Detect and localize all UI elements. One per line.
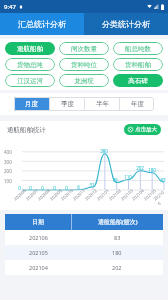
staticText: 龙洲垸: [74, 77, 94, 85]
staticText: 380: [100, 148, 108, 154]
staticText: 通航船舶(艘次): [98, 218, 138, 226]
staticText: 0: [53, 185, 56, 191]
staticText: 船总吨数: [125, 45, 151, 53]
staticText: 79: [112, 177, 118, 183]
staticText: 日期: [32, 218, 44, 226]
staticText: 202: [112, 264, 122, 271]
staticText: 货种吨位: [71, 61, 97, 69]
staticText: 9:47: [4, 3, 16, 11]
button[interactable]: 江汉运河: [5, 74, 55, 87]
staticText: 高石碑: [128, 77, 148, 85]
button[interactable]: 高石碑: [113, 74, 163, 87]
button[interactable]: 通航船舶: [5, 42, 55, 55]
staticText: 0: [18, 185, 21, 191]
staticText: 202103: [120, 188, 135, 202]
staticText: 202006: [13, 188, 28, 202]
staticText: 100: [4, 178, 12, 184]
staticText: 通航船舶: [17, 45, 43, 53]
staticText: 202106: [153, 189, 168, 207]
staticText: 202011: [72, 188, 87, 202]
staticText: 月度: [25, 100, 38, 108]
staticText: 202: [136, 165, 144, 171]
staticText: 200: [4, 168, 12, 174]
staticText: 202106: [29, 234, 48, 241]
button[interactable]: 货物总吨: [5, 58, 55, 71]
staticText: 202101: [96, 188, 111, 202]
button[interactable]: 分类统计分析: [84, 13, 168, 35]
button[interactable]: 船总吨数: [113, 42, 163, 55]
staticText: 202007: [25, 188, 40, 202]
button[interactable]: 半年: [85, 97, 119, 111]
staticText: 点击放大: [135, 126, 157, 133]
staticText: 0: [29, 185, 32, 191]
staticText: 0: [41, 185, 44, 191]
staticText: 汇总统计分析: [18, 19, 66, 29]
button[interactable]: 点击放大: [128, 126, 157, 133]
staticText: 202012: [84, 188, 99, 202]
staticText: 83: [160, 177, 166, 183]
button[interactable]: 年度: [120, 97, 154, 111]
button[interactable]: 202106: [5, 230, 163, 245]
staticText: 300: [4, 159, 12, 165]
staticText: 202105: [143, 188, 158, 202]
staticText: 180: [148, 167, 156, 173]
staticText: 0: [65, 185, 68, 191]
staticText: 分类统计分析: [102, 19, 150, 29]
staticText: 180: [112, 249, 122, 256]
staticText: 400: [4, 149, 12, 155]
button[interactable]: 202104: [5, 260, 163, 275]
staticText: 江汉运河: [17, 77, 43, 85]
staticText: 6: [77, 184, 80, 190]
button[interactable]: 汇总统计分析: [0, 13, 84, 35]
staticText: 半年: [96, 100, 109, 108]
button[interactable]: 闸次数量: [59, 42, 109, 55]
button[interactable]: 龙洲垸: [59, 74, 109, 87]
staticText: 季度: [61, 100, 74, 108]
staticText: 202104: [131, 188, 146, 202]
staticText: 闸次数量: [71, 45, 97, 53]
staticText: 通航船舶统计: [7, 126, 46, 134]
staticText: 202104: [29, 264, 48, 271]
button[interactable]: 货种吨位: [59, 58, 109, 71]
staticText: 83: [114, 234, 121, 241]
staticText: 202010: [60, 188, 75, 202]
staticText: 202008: [37, 188, 52, 202]
staticText: 货种船舶: [125, 61, 151, 69]
button[interactable]: 202105: [5, 245, 163, 260]
button[interactable]: 月度: [14, 97, 49, 111]
staticText: 202009: [49, 188, 64, 202]
staticText: 货物总吨: [17, 61, 43, 69]
staticText: 202102: [108, 188, 123, 202]
staticText: 110: [124, 174, 132, 180]
staticText: 202105: [29, 249, 48, 256]
staticText: 年度: [131, 100, 144, 108]
button[interactable]: 货种船舶: [113, 58, 163, 71]
staticText: 31: [89, 182, 95, 188]
button[interactable]: 季度: [50, 97, 84, 111]
